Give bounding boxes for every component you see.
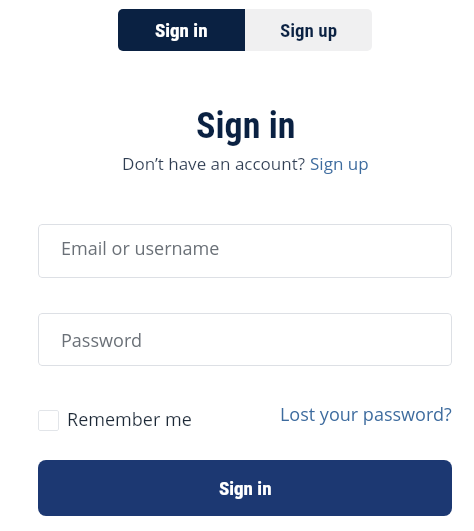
staticText: Remember me: [67, 407, 192, 432]
button[interactable]: Sign up: [245, 9, 372, 51]
staticText: Password: [61, 328, 142, 353]
staticText: Sign in: [155, 19, 208, 41]
staticText: Sign up: [280, 19, 338, 41]
staticText: Sign in: [219, 477, 272, 499]
button[interactable]: Password: [38, 313, 452, 366]
staticText: Sign in: [196, 105, 296, 147]
button[interactable]: Lost your password?: [280, 402, 452, 427]
staticText: Lost your password?: [280, 402, 452, 427]
button[interactable]: Sign up: [310, 152, 369, 175]
button[interactable]: Sign in: [118, 9, 245, 51]
button[interactable]: Sign in: [38, 460, 452, 516]
staticText: Sign up: [310, 152, 369, 175]
staticText: Email or username: [61, 236, 220, 261]
staticText: Don’t have an account?: [122, 152, 310, 175]
button[interactable]: Email or username: [38, 224, 452, 278]
button[interactable]: Remember me: [38, 407, 192, 432]
